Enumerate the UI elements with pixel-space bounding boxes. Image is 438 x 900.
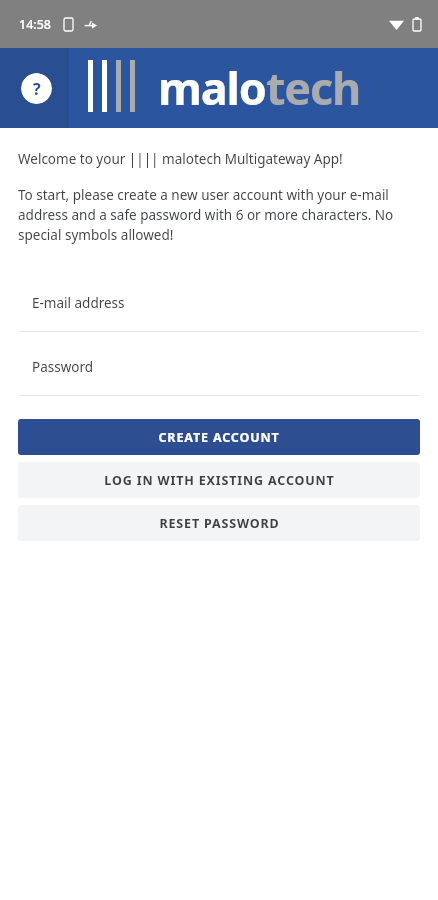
staticText: Welcome to your |||| malotech Multigatew… (18, 150, 343, 168)
staticText: LOG IN WITH EXISTING ACCOUNT (104, 472, 335, 489)
button[interactable]: E-mail address (0, 294, 438, 332)
staticText: 14:58 (19, 16, 52, 33)
button[interactable]: CREATE ACCOUNT (18, 419, 420, 455)
button[interactable]: Help (21, 73, 52, 104)
staticText: Password (32, 358, 94, 376)
button[interactable]: LOG IN WITH EXISTING ACCOUNT (18, 462, 420, 498)
button[interactable]: RESET PASSWORD (18, 505, 420, 541)
staticText: E-mail address (32, 294, 125, 312)
staticText: ? (33, 78, 41, 100)
staticText: malo (158, 57, 266, 118)
button[interactable]: Password (0, 358, 438, 396)
staticText: To start, please create a new user accou… (18, 186, 420, 244)
staticText: tech (266, 57, 361, 118)
staticText: CREATE ACCOUNT (158, 429, 280, 446)
staticText: RESET PASSWORD (159, 515, 280, 532)
